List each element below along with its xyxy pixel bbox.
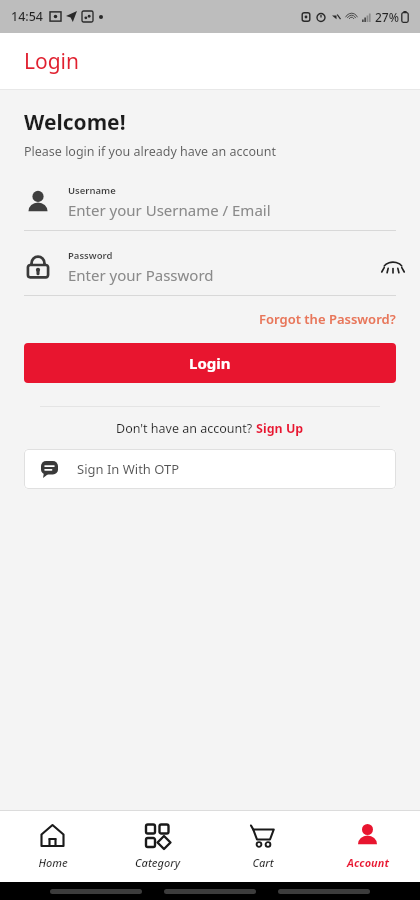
staticText: Account bbox=[347, 855, 389, 870]
button[interactable]: Home bbox=[0, 811, 105, 882]
staticText: Welcome! bbox=[24, 108, 126, 137]
staticText: Enter your Password bbox=[68, 265, 214, 285]
button[interactable]: Account bbox=[315, 811, 420, 882]
staticText: Username bbox=[68, 184, 116, 197]
button[interactable]: Category bbox=[105, 811, 210, 882]
staticText: 14:54 bbox=[11, 8, 44, 25]
staticText: Home bbox=[38, 855, 68, 870]
button[interactable]: Cart bbox=[210, 811, 315, 882]
button[interactable]: Sign In With OTP bbox=[24, 449, 396, 489]
staticText: Sign In With OTP bbox=[77, 460, 180, 478]
staticText: Cart bbox=[252, 855, 274, 870]
staticText: Sign Up bbox=[256, 420, 304, 437]
button[interactable]: Forgot the Password? bbox=[259, 308, 420, 330]
button[interactable]: Username bbox=[0, 184, 420, 220]
staticText: Password bbox=[68, 249, 113, 262]
staticText: Please login if you already have an acco… bbox=[24, 143, 276, 160]
staticText: Category bbox=[135, 855, 180, 870]
button[interactable]: Show password bbox=[376, 250, 410, 284]
button[interactable]: Sign Up bbox=[256, 420, 304, 437]
staticText: Enter your Username / Email bbox=[68, 200, 271, 220]
button[interactable]: Login bbox=[24, 343, 396, 383]
staticText: Login bbox=[189, 353, 231, 373]
staticText: Login bbox=[24, 47, 80, 76]
staticText: 27% bbox=[375, 9, 399, 25]
staticText: Forgot the Password? bbox=[259, 310, 396, 328]
staticText: Don't have an account? bbox=[116, 420, 256, 437]
button[interactable]: Password bbox=[0, 249, 420, 285]
